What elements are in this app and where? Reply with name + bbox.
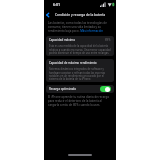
staticText: Condición y recarga de la batería [55,13,105,17]
staticText: Las baterías, como todas las tecnologías… [48,21,113,33]
staticText: 89% [105,38,111,42]
staticText: Capacidad máxima [49,38,75,42]
button[interactable]: Back [44,11,52,19]
staticText: Capacidad de máximo rendimiento [49,61,97,65]
staticText: 6:01 [53,2,61,7]
staticText: El iPhone aprende tu rutina diaria de re… [48,95,113,107]
staticText: Esta es una medida de la capacidad de la… [49,44,111,54]
button[interactable]: Capacidad máxima [46,36,114,56]
staticText: Recarga optimizada [49,87,76,91]
button[interactable]: Capacidad de máximo rendimiento [46,59,114,82]
button[interactable]: Recarga optimizada [46,85,114,93]
staticText: Sistemas dinámicos integrados de softwar… [49,67,111,80]
